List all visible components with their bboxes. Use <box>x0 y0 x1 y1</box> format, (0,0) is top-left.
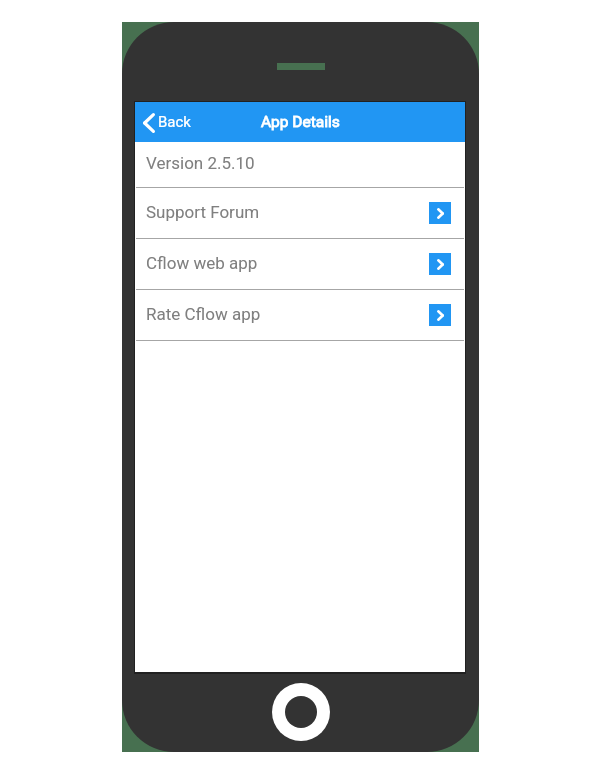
staticText: App Details <box>261 113 340 131</box>
staticText: Back <box>158 113 191 131</box>
button[interactable]: Support Forum <box>135 188 465 238</box>
staticText: Version 2.5.10 <box>146 153 255 173</box>
staticText: Support Forum <box>146 202 260 222</box>
button[interactable]: Home <box>272 683 330 741</box>
staticText: Cflow web app <box>146 253 258 273</box>
button[interactable]: Cflow web app <box>135 239 465 289</box>
button[interactable]: Rate Cflow app <box>429 304 451 326</box>
button[interactable]: Rate Cflow app <box>135 290 465 340</box>
staticText: Rate Cflow app <box>146 304 261 324</box>
button[interactable]: Back <box>135 102 201 142</box>
button[interactable]: Cflow web app <box>429 253 451 275</box>
button[interactable]: Support Forum <box>429 202 451 224</box>
button[interactable]: Version 2.5.10 <box>135 142 465 187</box>
